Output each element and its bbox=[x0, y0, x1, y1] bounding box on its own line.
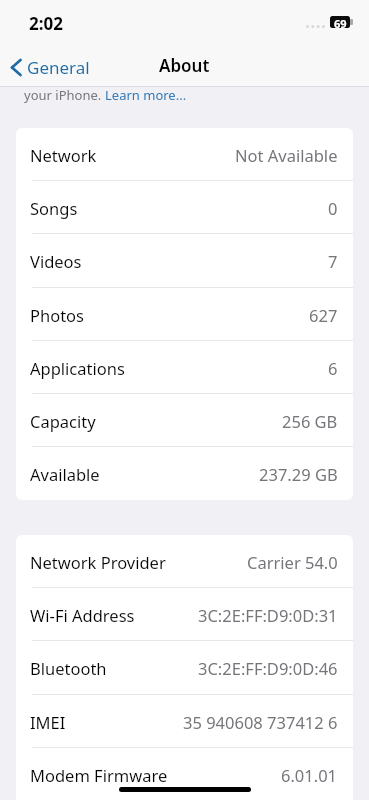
button[interactable]: IMEI bbox=[16, 695, 353, 748]
staticText: 0 bbox=[328, 197, 338, 219]
staticText: 256 GB bbox=[282, 410, 338, 432]
button[interactable]: Available bbox=[16, 447, 353, 500]
staticText: IMEI bbox=[30, 711, 66, 733]
staticText: Songs bbox=[30, 197, 78, 219]
button[interactable]: Learn more... bbox=[105, 86, 187, 104]
staticText: 6.01.01 bbox=[281, 764, 338, 786]
button[interactable]: Videos bbox=[16, 234, 353, 288]
staticText: General bbox=[27, 56, 90, 79]
staticText: Applications bbox=[30, 357, 125, 379]
staticText: 7 bbox=[328, 250, 338, 272]
staticText: Videos bbox=[30, 250, 82, 272]
staticText: Wi-Fi Address bbox=[30, 604, 135, 626]
button[interactable]: Songs bbox=[16, 181, 353, 234]
staticText: your iPhone. bbox=[24, 86, 105, 104]
button[interactable]: Bluetooth bbox=[16, 641, 353, 695]
staticText: 3C:2E:FF:D9:0D:31 bbox=[198, 604, 338, 626]
button[interactable]: Network bbox=[16, 128, 353, 181]
button[interactable]: Capacity bbox=[16, 394, 353, 447]
staticText: Network bbox=[30, 144, 97, 166]
staticText: 3C:2E:FF:D9:0D:46 bbox=[198, 657, 338, 679]
staticText: Bluetooth bbox=[30, 657, 107, 679]
button[interactable]: Modem Firmware bbox=[16, 748, 353, 800]
button[interactable]: Network Provider bbox=[16, 535, 353, 588]
staticText: 69 bbox=[334, 16, 347, 28]
button[interactable]: Wi-Fi Address bbox=[16, 588, 353, 641]
staticText: Photos bbox=[30, 304, 85, 326]
staticText: Modem Firmware bbox=[30, 764, 168, 786]
staticText: 35 940608 737412 6 bbox=[183, 711, 338, 733]
staticText: Network Provider bbox=[30, 551, 166, 573]
staticText: Carrier 54.0 bbox=[247, 551, 338, 573]
staticText: About bbox=[159, 54, 210, 77]
staticText: Capacity bbox=[30, 410, 96, 432]
staticText: 237.29 GB bbox=[259, 463, 338, 485]
button[interactable]: Photos bbox=[16, 288, 353, 341]
staticText: 2:02 bbox=[29, 12, 63, 35]
staticText: Available bbox=[30, 463, 100, 485]
button[interactable]: Applications bbox=[16, 341, 353, 394]
staticText: Not Available bbox=[235, 144, 338, 166]
button[interactable]: Back to General bbox=[6, 53, 94, 82]
staticText: 6 bbox=[328, 357, 338, 379]
staticText: 627 bbox=[309, 304, 338, 326]
